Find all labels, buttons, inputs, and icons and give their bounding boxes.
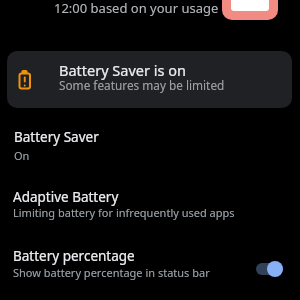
button[interactable]: Battery Saver <box>0 122 300 172</box>
staticText: 12:00 based on your usage <box>54 0 219 17</box>
staticText: Battery Saver <box>14 128 99 146</box>
staticText: Show battery percentage in status bar <box>13 265 210 280</box>
button[interactable]: Battery Saver is on <box>7 51 292 108</box>
staticText: Battery percentage <box>13 247 135 265</box>
staticText: Adaptive Battery <box>13 188 119 206</box>
staticText: Limiting battery for infrequently used a… <box>13 205 235 220</box>
staticText: On <box>14 148 30 163</box>
button[interactable]: Battery percentage <box>0 241 300 293</box>
button[interactable]: Adaptive Battery <box>0 182 300 232</box>
button[interactable] <box>267 261 283 277</box>
staticText: Some features may be limited <box>59 77 225 93</box>
staticText: Battery Saver is on <box>59 60 186 80</box>
